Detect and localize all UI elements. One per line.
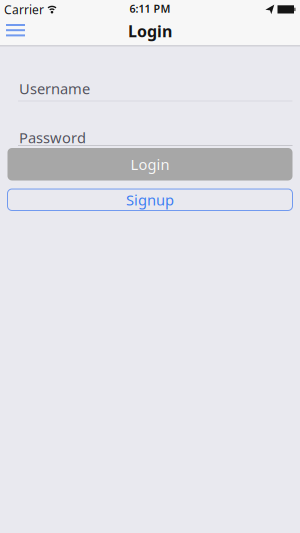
staticText: Login [128,20,172,42]
staticText: 6:11 PM [129,1,170,16]
staticText: Signup [126,190,174,209]
button[interactable]: Password [0,130,300,146]
staticText: Username [19,79,90,98]
button[interactable]: Username [0,83,300,101]
button[interactable]: Menu [0,23,25,42]
staticText: Password [19,128,86,147]
staticText: Login [130,154,169,174]
staticText: Carrier [4,1,44,17]
button[interactable]: Signup [7,189,292,210]
button[interactable]: Login [7,148,292,180]
